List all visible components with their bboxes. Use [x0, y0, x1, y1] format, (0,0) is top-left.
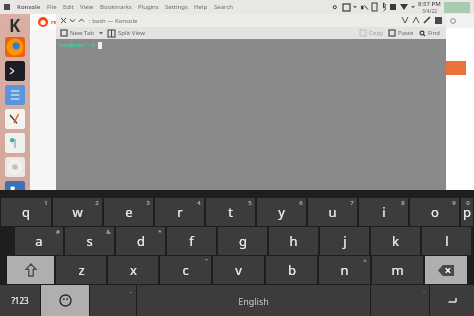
- staticText: u: [328, 203, 337, 221]
- staticText: j: [343, 232, 347, 250]
- button[interactable]: Minimize: [68, 16, 77, 25]
- button[interactable]: n: [319, 256, 370, 284]
- button[interactable]: File: [44, 3, 60, 11]
- button[interactable]: j: [320, 227, 369, 255]
- staticText: f: [189, 232, 194, 250]
- button[interactable]: w: [53, 198, 102, 226]
- button[interactable]: v: [213, 256, 264, 284]
- button[interactable]: t: [206, 198, 255, 226]
- staticText: *: [158, 228, 162, 236]
- button[interactable]: Backspace: [425, 256, 467, 284]
- button[interactable]: q: [1, 198, 51, 226]
- staticText: p: [463, 203, 471, 221]
- staticText: Copy: [369, 29, 384, 37]
- button[interactable]: Terminal: [5, 61, 25, 81]
- button[interactable]: e: [104, 198, 153, 226]
- button[interactable]: ?123: [0, 285, 40, 316]
- button[interactable]: a: [15, 227, 63, 255]
- staticText: ^: [363, 257, 367, 265]
- staticText: n: [340, 261, 349, 279]
- button[interactable]: Plugins: [135, 3, 162, 11]
- button[interactable]: h: [269, 227, 318, 255]
- button[interactable]: Search: [211, 3, 236, 11]
- button[interactable]: View: [77, 3, 97, 11]
- button[interactable]: r: [155, 198, 204, 226]
- other: Display: [343, 4, 350, 11]
- button[interactable]: Files: [5, 181, 25, 201]
- button[interactable]: f: [167, 227, 216, 255]
- staticText: g: [239, 232, 247, 250]
- other: Accessibility: [332, 4, 339, 11]
- staticText: #: [56, 228, 60, 236]
- other: Wifi: [400, 4, 408, 10]
- button[interactable]: p: [461, 198, 473, 226]
- button[interactable]: Settings: [5, 157, 25, 177]
- other: Bluetooth: [381, 3, 386, 11]
- button[interactable]: Close: [59, 16, 68, 25]
- staticText: ,: [130, 287, 132, 295]
- staticText: w: [72, 203, 83, 221]
- button[interactable]: Editor: [5, 109, 25, 129]
- button[interactable]: Paste: [398, 29, 414, 37]
- button[interactable]: d: [116, 227, 165, 255]
- button[interactable]: u: [308, 198, 357, 226]
- button[interactable]: Emoji: [41, 285, 89, 316]
- staticText: English: [238, 295, 269, 307]
- staticText: 8: [401, 199, 405, 207]
- staticText: y: [278, 203, 285, 221]
- button[interactable]: Split View: [118, 29, 145, 37]
- button[interactable]: x: [108, 256, 158, 284]
- staticText: 0: [466, 199, 470, 207]
- staticText: 3/4/22: [422, 8, 438, 14]
- staticText: h: [289, 232, 298, 250]
- staticText: K: [9, 14, 21, 32]
- staticText: k: [392, 232, 399, 250]
- button[interactable]: Dictionary: [5, 133, 25, 153]
- button[interactable]: Writer: [5, 205, 25, 225]
- button[interactable]: Settings: [162, 3, 191, 11]
- button[interactable]: o: [410, 198, 459, 226]
- staticText: 9: [452, 199, 456, 207]
- button[interactable]: m: [372, 256, 423, 284]
- button[interactable]: Enter: [430, 285, 474, 316]
- button[interactable]: Notes: [5, 85, 25, 105]
- button[interactable]: l: [422, 227, 471, 255]
- staticText: &: [106, 228, 111, 236]
- button[interactable]: z: [56, 256, 106, 284]
- button[interactable]: c: [160, 256, 211, 284]
- button[interactable]: Firefox: [5, 37, 25, 57]
- staticText: x: [130, 261, 137, 279]
- staticText: c: [64, 44, 67, 52]
- button[interactable]: y: [257, 198, 306, 226]
- staticText: c: [182, 261, 189, 279]
- button[interactable]: English: [137, 285, 370, 316]
- staticText: 4: [197, 199, 201, 207]
- button[interactable]: Shift: [7, 256, 54, 284]
- staticText: i: [382, 203, 386, 221]
- staticText: .: [423, 287, 425, 295]
- button[interactable]: k: [371, 227, 420, 255]
- other: Battery: [372, 3, 377, 11]
- staticText: r: [177, 203, 183, 221]
- button[interactable]: Edit: [60, 3, 77, 11]
- button[interactable]: Maximize: [77, 16, 86, 25]
- staticText: l: [445, 232, 449, 250]
- staticText: d: [137, 232, 145, 250]
- button[interactable]: Bookmarks: [97, 3, 135, 11]
- button[interactable]: s: [65, 227, 114, 255]
- button[interactable]: i: [359, 198, 408, 226]
- staticText: 8:57 PM: [418, 0, 441, 8]
- staticText: 5: [248, 199, 252, 207]
- button[interactable]: g: [218, 227, 267, 255]
- button[interactable]: New Tab: [70, 29, 95, 37]
- button[interactable]: b: [266, 256, 317, 284]
- button[interactable]: Find: [428, 29, 441, 37]
- button[interactable]: Konsole: [14, 3, 44, 11]
- button[interactable]: Help: [191, 3, 211, 11]
